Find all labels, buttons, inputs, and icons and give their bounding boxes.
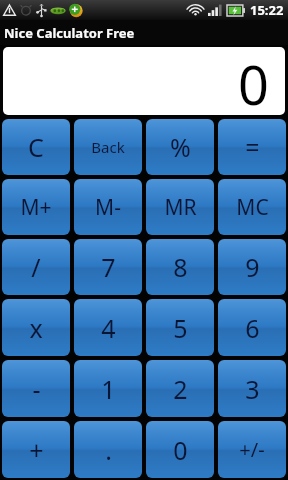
staticText: % bbox=[170, 130, 191, 164]
other: Wi-Fi bbox=[188, 4, 203, 16]
staticText: 7 bbox=[101, 250, 116, 284]
staticText: 15:22 bbox=[250, 1, 284, 19]
button[interactable]: 9 bbox=[218, 239, 286, 295]
staticText: Nice Calculator Free bbox=[4, 24, 135, 42]
staticText: +/- bbox=[239, 436, 265, 463]
button[interactable]: 8 bbox=[146, 239, 214, 295]
button[interactable]: 4 bbox=[74, 299, 142, 356]
button[interactable]: + bbox=[2, 421, 70, 478]
staticText: 9 bbox=[245, 250, 260, 284]
staticText: + bbox=[29, 433, 44, 467]
button[interactable]: 7 bbox=[74, 239, 142, 295]
staticText: . bbox=[105, 433, 112, 467]
staticText: 8 bbox=[173, 250, 188, 284]
staticText: M+ bbox=[20, 193, 52, 222]
button[interactable]: M- bbox=[74, 179, 142, 235]
other: Sync bbox=[68, 3, 83, 17]
other: Notification bbox=[50, 4, 66, 17]
button[interactable]: 2 bbox=[146, 360, 214, 417]
button[interactable]: 0 bbox=[146, 421, 214, 478]
staticText: M- bbox=[95, 193, 121, 222]
other: Warning bbox=[3, 4, 16, 17]
other: Signal strength bbox=[208, 4, 222, 16]
staticText: 0 bbox=[173, 433, 188, 467]
button[interactable]: x bbox=[2, 299, 70, 356]
staticText: / bbox=[31, 250, 41, 284]
staticText: x bbox=[29, 311, 43, 345]
button[interactable]: Back bbox=[74, 119, 142, 175]
button[interactable]: / bbox=[2, 239, 70, 295]
button[interactable]: M+ bbox=[2, 179, 70, 235]
staticText: = bbox=[245, 130, 260, 164]
staticText: 3 bbox=[245, 372, 260, 406]
staticText: C bbox=[28, 130, 44, 164]
staticText: 2 bbox=[173, 372, 188, 406]
button[interactable]: MR bbox=[146, 179, 214, 235]
button[interactable]: MC bbox=[218, 179, 286, 235]
staticText: 6 bbox=[245, 311, 260, 345]
button[interactable]: 5 bbox=[146, 299, 214, 356]
staticText: 4 bbox=[101, 311, 116, 345]
button[interactable]: = bbox=[218, 119, 286, 175]
staticText: 0 bbox=[238, 47, 269, 113]
button[interactable]: 6 bbox=[218, 299, 286, 356]
button[interactable]: % bbox=[146, 119, 214, 175]
staticText: Back bbox=[91, 137, 125, 157]
other: Battery charging bbox=[227, 5, 245, 16]
button[interactable]: C bbox=[2, 119, 70, 175]
other: USB connected bbox=[36, 4, 47, 17]
staticText: - bbox=[32, 372, 41, 406]
staticText: MC bbox=[236, 193, 269, 222]
button[interactable]: - bbox=[2, 360, 70, 417]
button[interactable]: 1 bbox=[74, 360, 142, 417]
button[interactable]: +/- bbox=[218, 421, 286, 478]
other: Alarm bbox=[20, 4, 32, 16]
staticText: MR bbox=[164, 193, 197, 222]
staticText: 1 bbox=[101, 372, 116, 406]
staticText: 5 bbox=[173, 311, 188, 345]
button[interactable]: . bbox=[74, 421, 142, 478]
button[interactable]: 3 bbox=[218, 360, 286, 417]
